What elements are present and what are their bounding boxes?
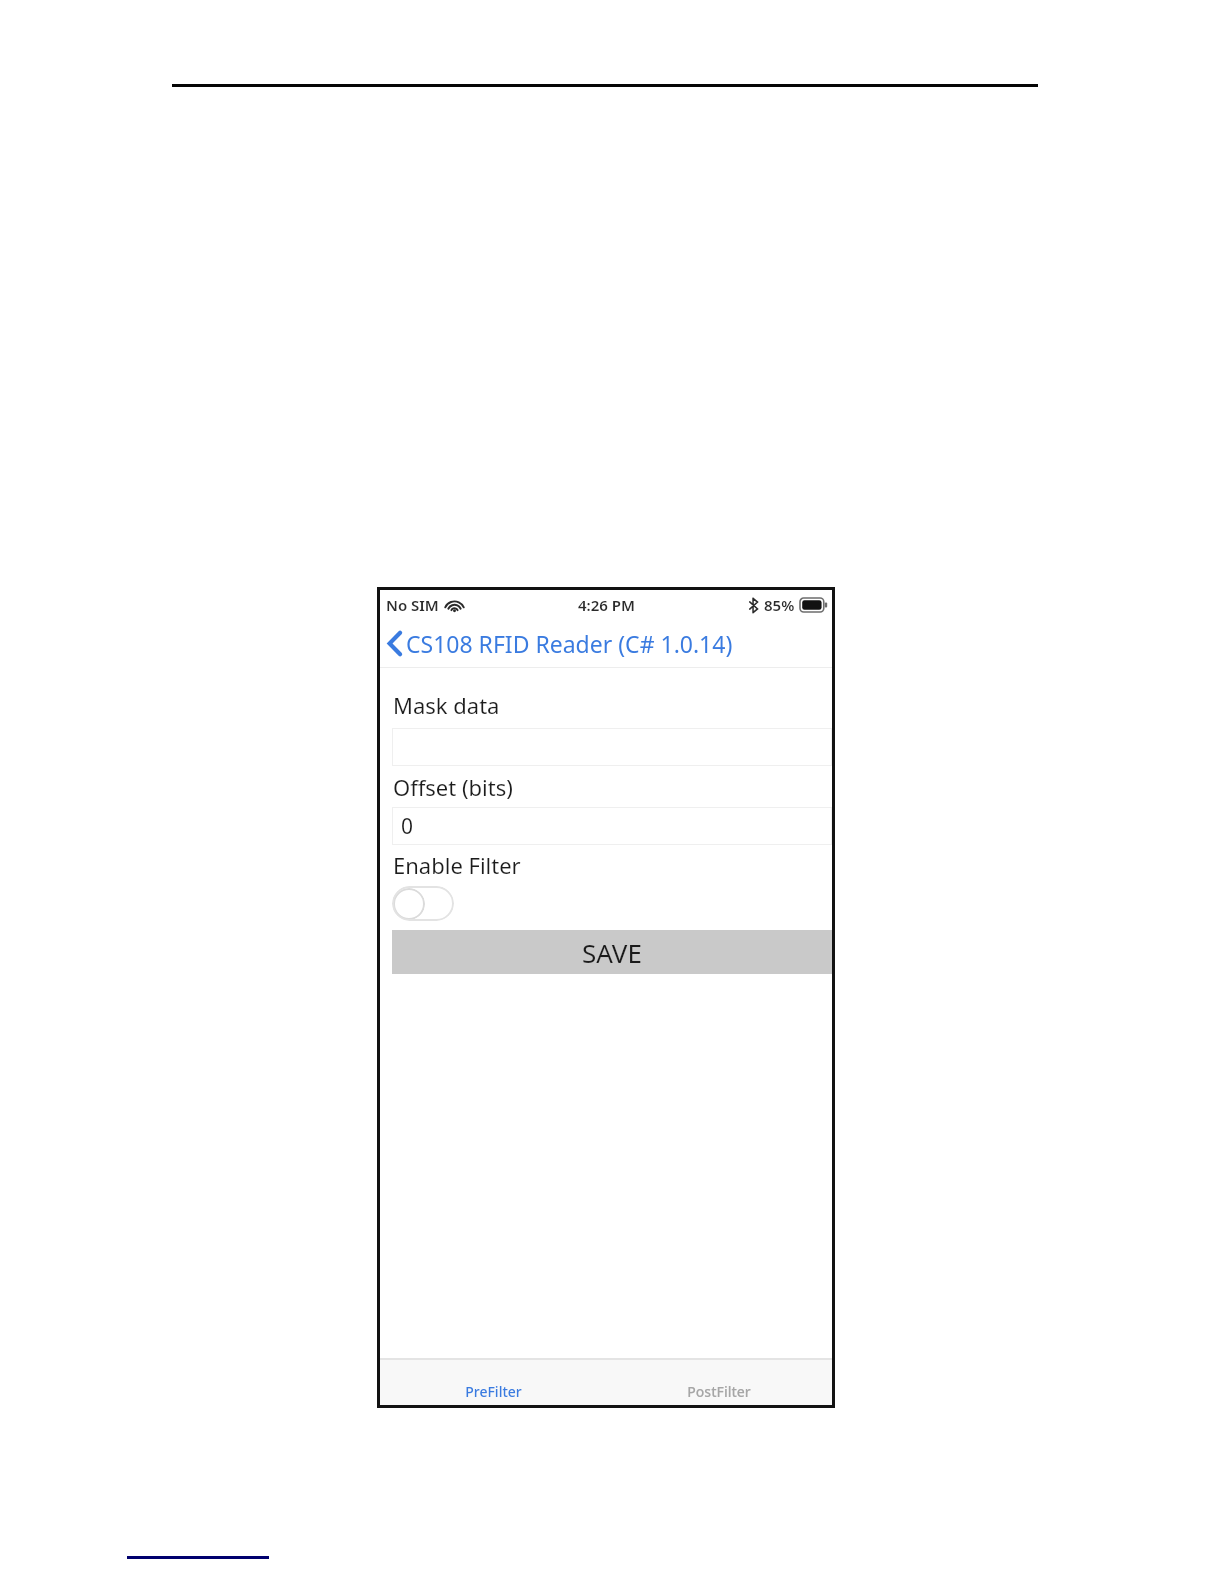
button[interactable]: Back to CS108 RFID Reader (380, 620, 832, 667)
staticText: SAVE (582, 935, 642, 970)
staticText: CS108 RFID Reader (C# 1.0.14) (406, 628, 733, 659)
button[interactable] (392, 728, 832, 766)
staticText: Enable Filter (393, 850, 521, 880)
button[interactable]: SAVE (392, 930, 832, 974)
staticText: Offset (bits) (393, 772, 513, 802)
staticText: PostFilter (687, 1382, 751, 1401)
button[interactable]: 0 (392, 807, 832, 845)
staticText: Mask data (393, 690, 500, 720)
button[interactable]: PreFilter (380, 1360, 606, 1405)
staticText: 4:26 PM (578, 595, 635, 615)
staticText: 0 (401, 812, 414, 841)
button[interactable]: PostFilter (606, 1360, 832, 1405)
button[interactable]: Enable Filter toggle, off (392, 886, 454, 921)
staticText: 85% (764, 595, 795, 615)
staticText: PreFilter (465, 1382, 522, 1401)
staticText: No SIM (386, 595, 439, 615)
